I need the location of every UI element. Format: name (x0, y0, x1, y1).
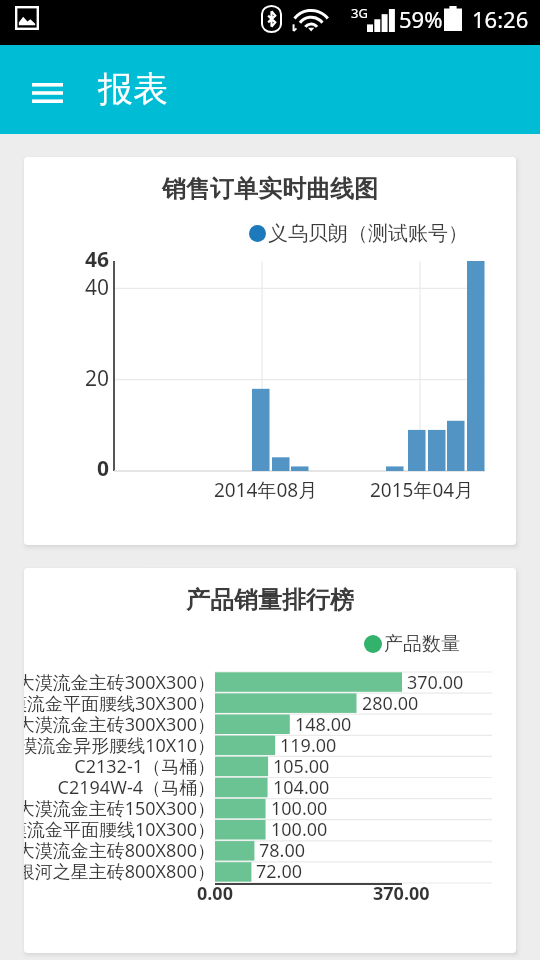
staticText: 0.00 (197, 881, 233, 906)
staticText: 100.00 (271, 817, 328, 842)
staticText: （大漠流金平面腰线30X300） (24, 691, 215, 716)
button[interactable]: 销售订单实时曲线图 (24, 157, 516, 545)
staticText: C2194W-4（马桶） (57, 775, 215, 800)
staticText: 0 (97, 454, 110, 482)
staticText: 3G (351, 4, 368, 22)
staticText: 46 (85, 245, 110, 273)
staticText: 104.00 (273, 775, 330, 800)
staticText: 59% (399, 4, 443, 34)
staticText: 72.00 (256, 859, 303, 884)
staticText: 100.00 (271, 796, 328, 821)
staticText: 销售订单实时曲线图 (162, 174, 378, 204)
staticText: （大漠流金主砖300X300） (24, 670, 215, 695)
staticText: 78.00 (259, 838, 306, 863)
button[interactable]: 产品销量排行榜 (24, 568, 516, 953)
staticText: 16:26 (472, 4, 529, 34)
staticText: 产品数量 (384, 632, 460, 656)
staticText: 报表 (98, 67, 168, 111)
staticText: 2015年04月 (370, 477, 474, 503)
staticText: 40 (85, 273, 110, 301)
staticText: 2014年08月 (214, 477, 318, 503)
staticText: 148.00 (295, 712, 352, 737)
staticText: 280.00 (362, 691, 419, 716)
staticText: （大漠流金主砖800X800） (24, 838, 215, 863)
staticText: （大漠流金主砖150X300） (24, 796, 215, 821)
button[interactable]: Open navigation menu (16, 64, 79, 121)
staticText: （大漠流金异形腰线10X10） (24, 733, 215, 758)
staticText: 20 (85, 364, 110, 392)
staticText: （银河之星主砖800X800） (24, 859, 215, 884)
staticText: 义乌贝朗（测试账号） (268, 221, 468, 246)
staticText: 370.00 (373, 881, 430, 906)
staticText: 119.00 (280, 733, 337, 758)
staticText: （大漠流金平面腰线10X300） (24, 817, 215, 842)
staticText: 产品销量排行榜 (186, 585, 354, 615)
staticText: C2132-1（马桶） (74, 754, 215, 779)
staticText: （大漠流金主砖300X300） (24, 712, 215, 737)
staticText: 370.00 (407, 670, 464, 695)
staticText: 105.00 (273, 754, 330, 779)
